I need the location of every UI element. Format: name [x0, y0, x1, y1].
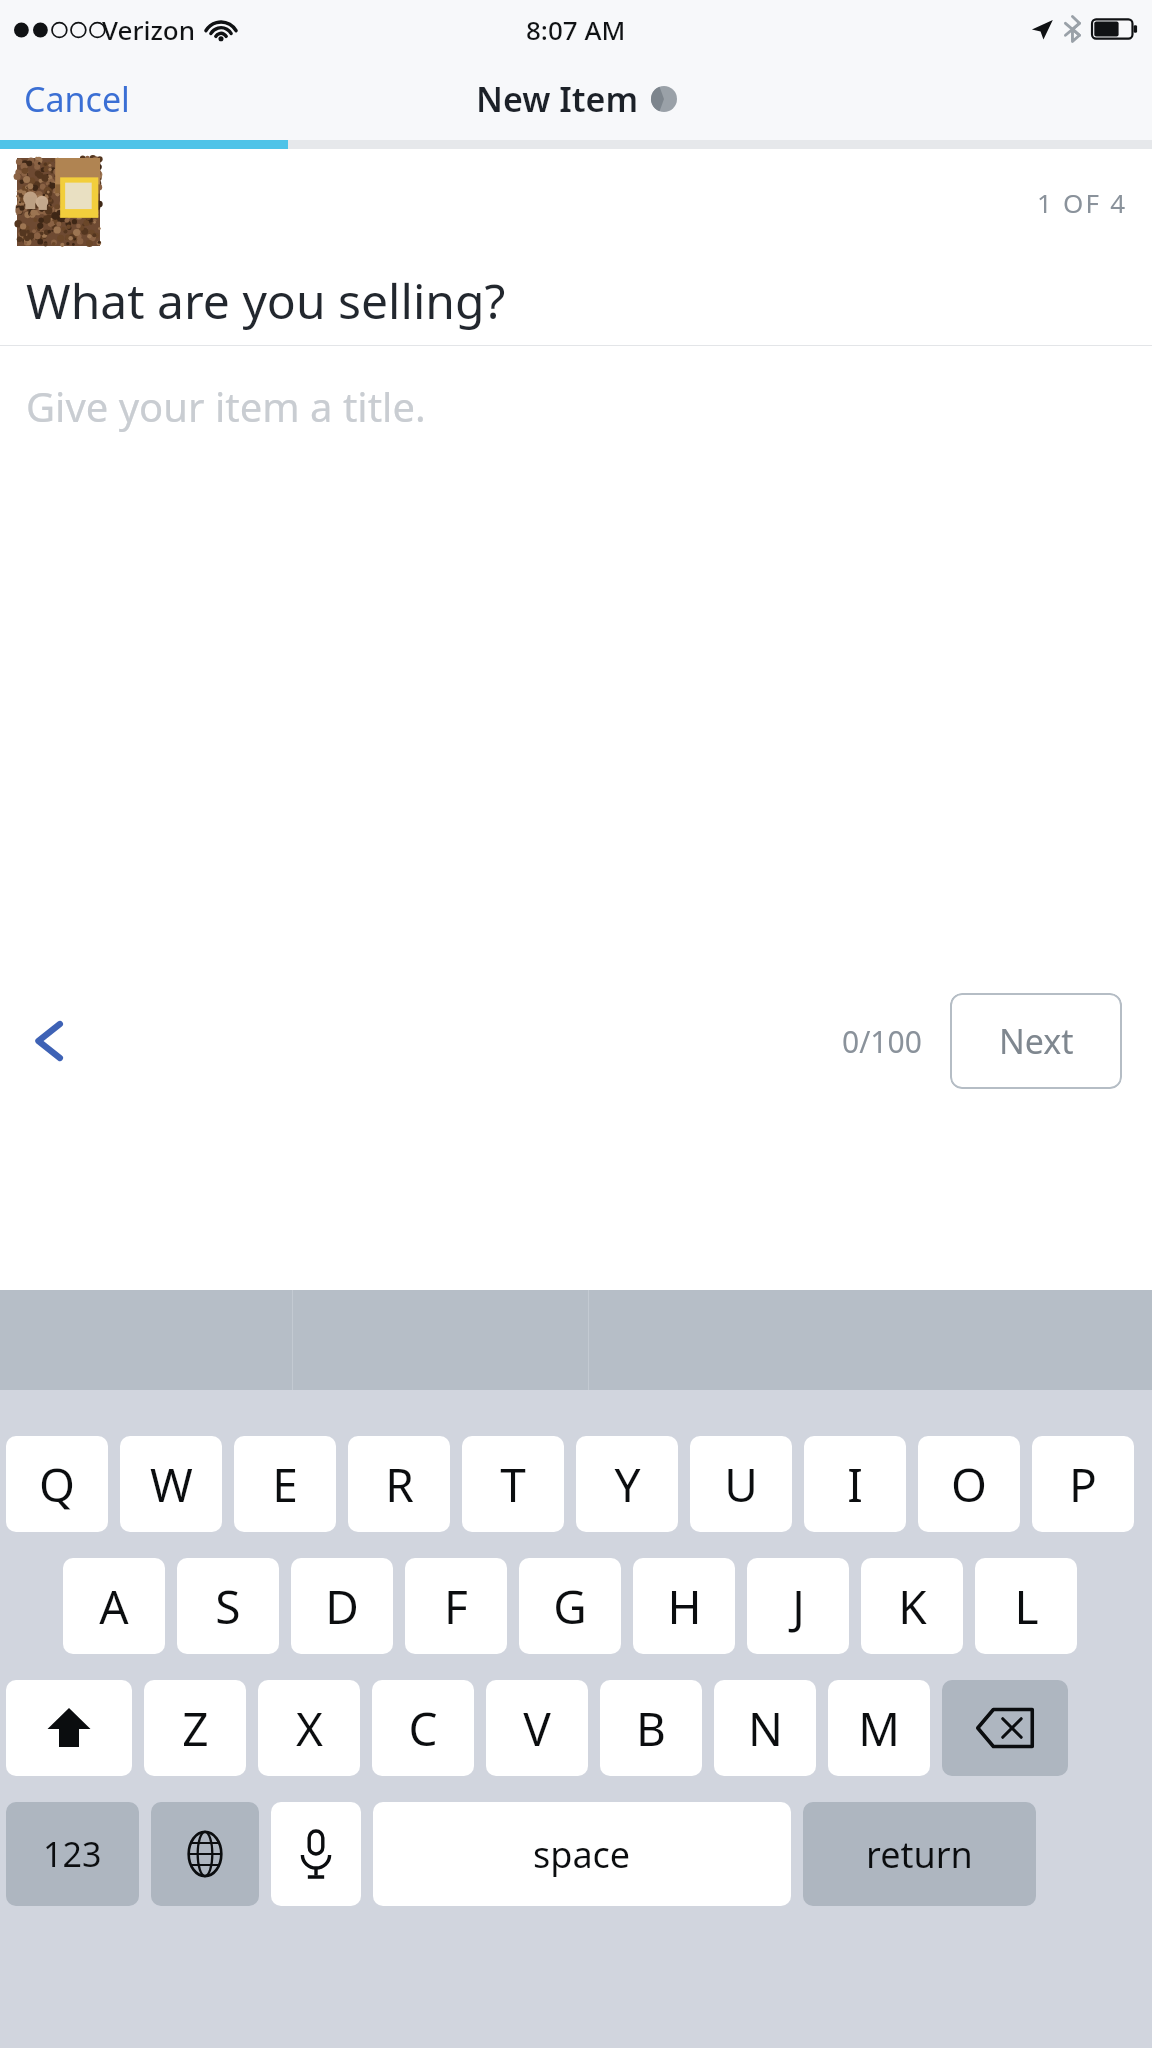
staticText: K	[898, 1575, 927, 1638]
staticText: G	[553, 1575, 587, 1638]
button[interactable]: E	[234, 1436, 336, 1532]
staticText: F	[444, 1575, 468, 1638]
staticText: 123	[43, 1831, 102, 1877]
button[interactable]: Change keyboard language	[151, 1802, 259, 1906]
staticText: Cancel	[24, 76, 130, 122]
button[interactable]: V	[486, 1680, 588, 1776]
button[interactable]: space	[373, 1802, 791, 1906]
staticText: New Item	[476, 76, 639, 122]
staticText: Verizon	[102, 12, 196, 47]
staticText: P	[1069, 1453, 1097, 1516]
staticText: 8:07 AM	[526, 12, 626, 47]
button[interactable]: A	[63, 1558, 165, 1654]
staticText: I	[847, 1453, 863, 1516]
button[interactable]: I	[804, 1436, 906, 1532]
button[interactable]: O	[918, 1436, 1020, 1532]
staticText: D	[325, 1575, 359, 1638]
staticText: W	[150, 1453, 193, 1516]
button[interactable]: Back	[14, 1004, 88, 1078]
staticText: Z	[182, 1697, 209, 1760]
button[interactable]: Cancel	[0, 62, 154, 136]
staticText: What are you selling?	[26, 268, 506, 333]
staticText: V	[523, 1697, 551, 1760]
other: Public listing	[651, 86, 677, 112]
staticText: space	[533, 1830, 631, 1879]
button[interactable]: Give your item a title.	[0, 346, 1152, 466]
button[interactable]: Dictate	[271, 1802, 361, 1906]
button[interactable]: Y	[576, 1436, 678, 1532]
button[interactable]: U	[690, 1436, 792, 1532]
staticText: Give your item a title.	[26, 379, 426, 433]
staticText: 0/100	[842, 1021, 922, 1062]
staticText: A	[99, 1575, 129, 1638]
button[interactable]: B	[600, 1680, 702, 1776]
button[interactable]: T	[462, 1436, 564, 1532]
staticText: 1 OF 4	[1037, 185, 1128, 220]
staticText: R	[385, 1453, 414, 1516]
button[interactable]: Q	[6, 1436, 108, 1532]
button[interactable]: return	[803, 1802, 1036, 1906]
staticText: H	[667, 1575, 702, 1638]
button[interactable]: C	[372, 1680, 474, 1776]
staticText: U	[724, 1453, 758, 1516]
staticText: Y	[614, 1453, 641, 1516]
button[interactable]: H	[633, 1558, 735, 1654]
button[interactable]: W	[120, 1436, 222, 1532]
staticText: S	[215, 1575, 241, 1638]
button[interactable]: R	[348, 1436, 450, 1532]
button[interactable]: D	[291, 1558, 393, 1654]
button[interactable]: Backspace	[942, 1680, 1068, 1776]
staticText: T	[500, 1453, 526, 1516]
button[interactable]: N	[714, 1680, 816, 1776]
staticText: B	[636, 1697, 666, 1760]
button[interactable]: K	[861, 1558, 963, 1654]
button[interactable]: X	[258, 1680, 360, 1776]
staticText: N	[748, 1697, 783, 1760]
staticText: E	[272, 1453, 298, 1516]
button[interactable]: J	[747, 1558, 849, 1654]
staticText: O	[951, 1453, 987, 1516]
staticText: Next	[999, 1018, 1074, 1064]
button[interactable]: Selected photo	[17, 158, 100, 246]
staticText: J	[792, 1575, 805, 1638]
button[interactable]: F	[405, 1558, 507, 1654]
staticText: X	[296, 1697, 323, 1760]
staticText: C	[408, 1697, 438, 1760]
staticText: L	[1014, 1575, 1039, 1638]
staticText: M	[858, 1697, 900, 1760]
button[interactable]: G	[519, 1558, 621, 1654]
staticText: Q	[39, 1453, 75, 1516]
button[interactable]: S	[177, 1558, 279, 1654]
button[interactable]: L	[975, 1558, 1077, 1654]
button[interactable]: Shift	[6, 1680, 132, 1776]
button[interactable]: 123	[6, 1802, 139, 1906]
button[interactable]: M	[828, 1680, 930, 1776]
button[interactable]: Next	[950, 993, 1122, 1089]
button[interactable]: P	[1032, 1436, 1134, 1532]
button[interactable]: Z	[144, 1680, 246, 1776]
staticText: return	[866, 1830, 973, 1879]
